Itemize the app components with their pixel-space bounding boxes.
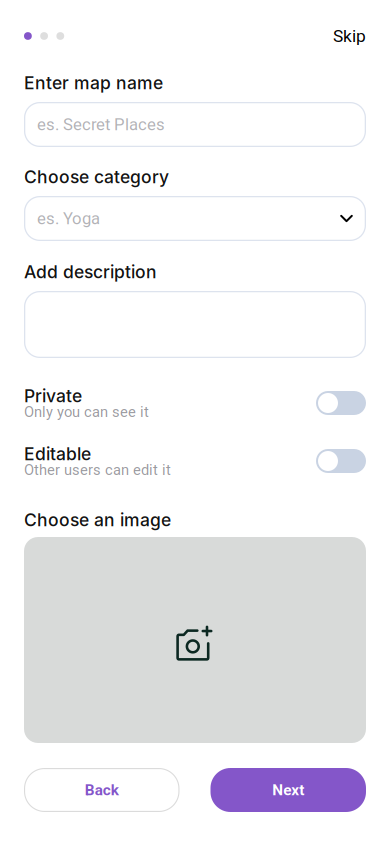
- button[interactable]: Editable: [316, 449, 366, 473]
- staticText: Choose an image: [24, 509, 171, 530]
- button[interactable]: Private: [316, 391, 366, 415]
- button[interactable]: Next: [210, 768, 366, 812]
- button[interactable]: es. Yoga: [24, 196, 366, 241]
- staticText: Editable: [24, 443, 91, 464]
- staticText: Add description: [24, 261, 157, 282]
- staticText: Private: [24, 385, 82, 406]
- staticText: Skip: [333, 26, 366, 46]
- button[interactable]: Choose an image: [24, 537, 366, 743]
- staticText: Back: [85, 781, 119, 799]
- staticText: es. Yoga: [37, 209, 100, 228]
- staticText: Enter map name: [24, 72, 163, 93]
- staticText: es. Secret Places: [37, 115, 165, 134]
- button[interactable]: Back: [24, 768, 179, 812]
- staticText: Only you can see it: [24, 403, 149, 421]
- staticText: Other users can edit it: [24, 461, 171, 479]
- staticText: Choose category: [24, 166, 169, 187]
- button[interactable]: Skip: [333, 27, 366, 45]
- staticText: Next: [272, 781, 304, 799]
